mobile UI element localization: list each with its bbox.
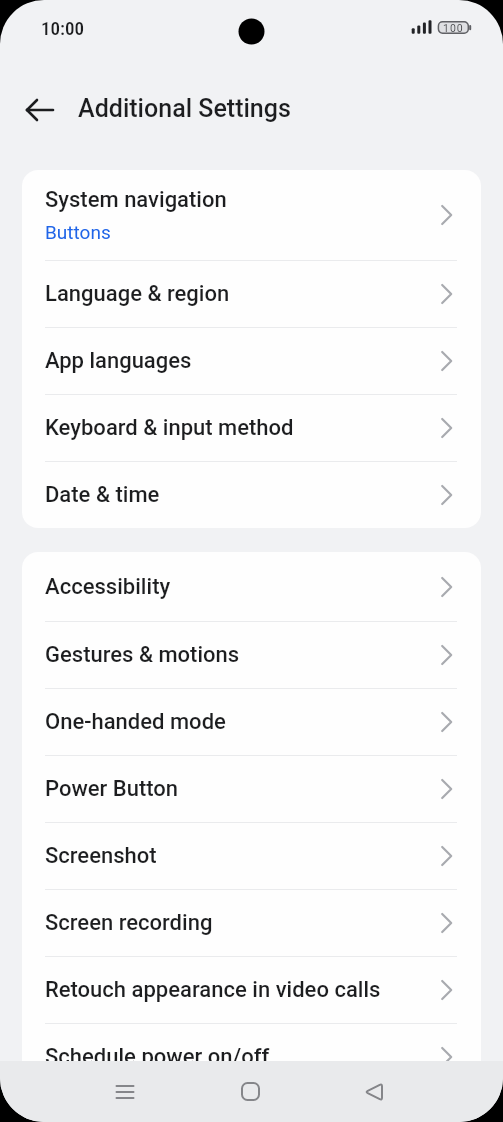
button[interactable]: Power Button [22,756,481,823]
staticText: Buttons [45,221,111,243]
staticText: Power Button [45,776,179,802]
button[interactable] [18,92,62,128]
staticText: Accessibility [45,574,171,600]
staticText: Language & region [45,281,230,307]
button[interactable]: App languages [22,328,481,395]
staticText: One-handed mode [45,709,226,735]
button[interactable]: Keyboard & input method [22,395,481,462]
button[interactable]: One-handed mode [22,689,481,756]
staticText: Gestures & motions [45,642,240,668]
staticText: Schedule power on/off [45,1044,270,1070]
staticText: Date & time [45,482,160,508]
button[interactable]: Screenshot [22,823,481,890]
staticText: System navigation [45,187,227,213]
staticText: Retouch appearance in video calls [45,977,381,1003]
button[interactable]: Retouch appearance in video calls [22,957,481,1024]
staticText: 10:00 [41,17,84,39]
staticText: Screenshot [45,843,157,869]
staticText: 100 [443,22,464,34]
staticText: Screen recording [45,910,213,936]
button[interactable]: Accessibility [22,552,481,622]
button[interactable]: Gestures & motions [22,622,481,689]
button[interactable] [313,1061,433,1122]
button[interactable]: Language & region [22,261,481,328]
staticText: Additional Settings [78,94,291,123]
button[interactable]: Screen recording [22,890,481,957]
button[interactable] [65,1061,185,1122]
button[interactable]: Schedule power on/off [22,1024,481,1090]
button[interactable] [190,1061,310,1122]
staticText: App languages [45,348,192,374]
button[interactable]: Date & time [22,462,481,528]
button[interactable]: System navigation [22,170,481,261]
staticText: Keyboard & input method [45,415,294,441]
